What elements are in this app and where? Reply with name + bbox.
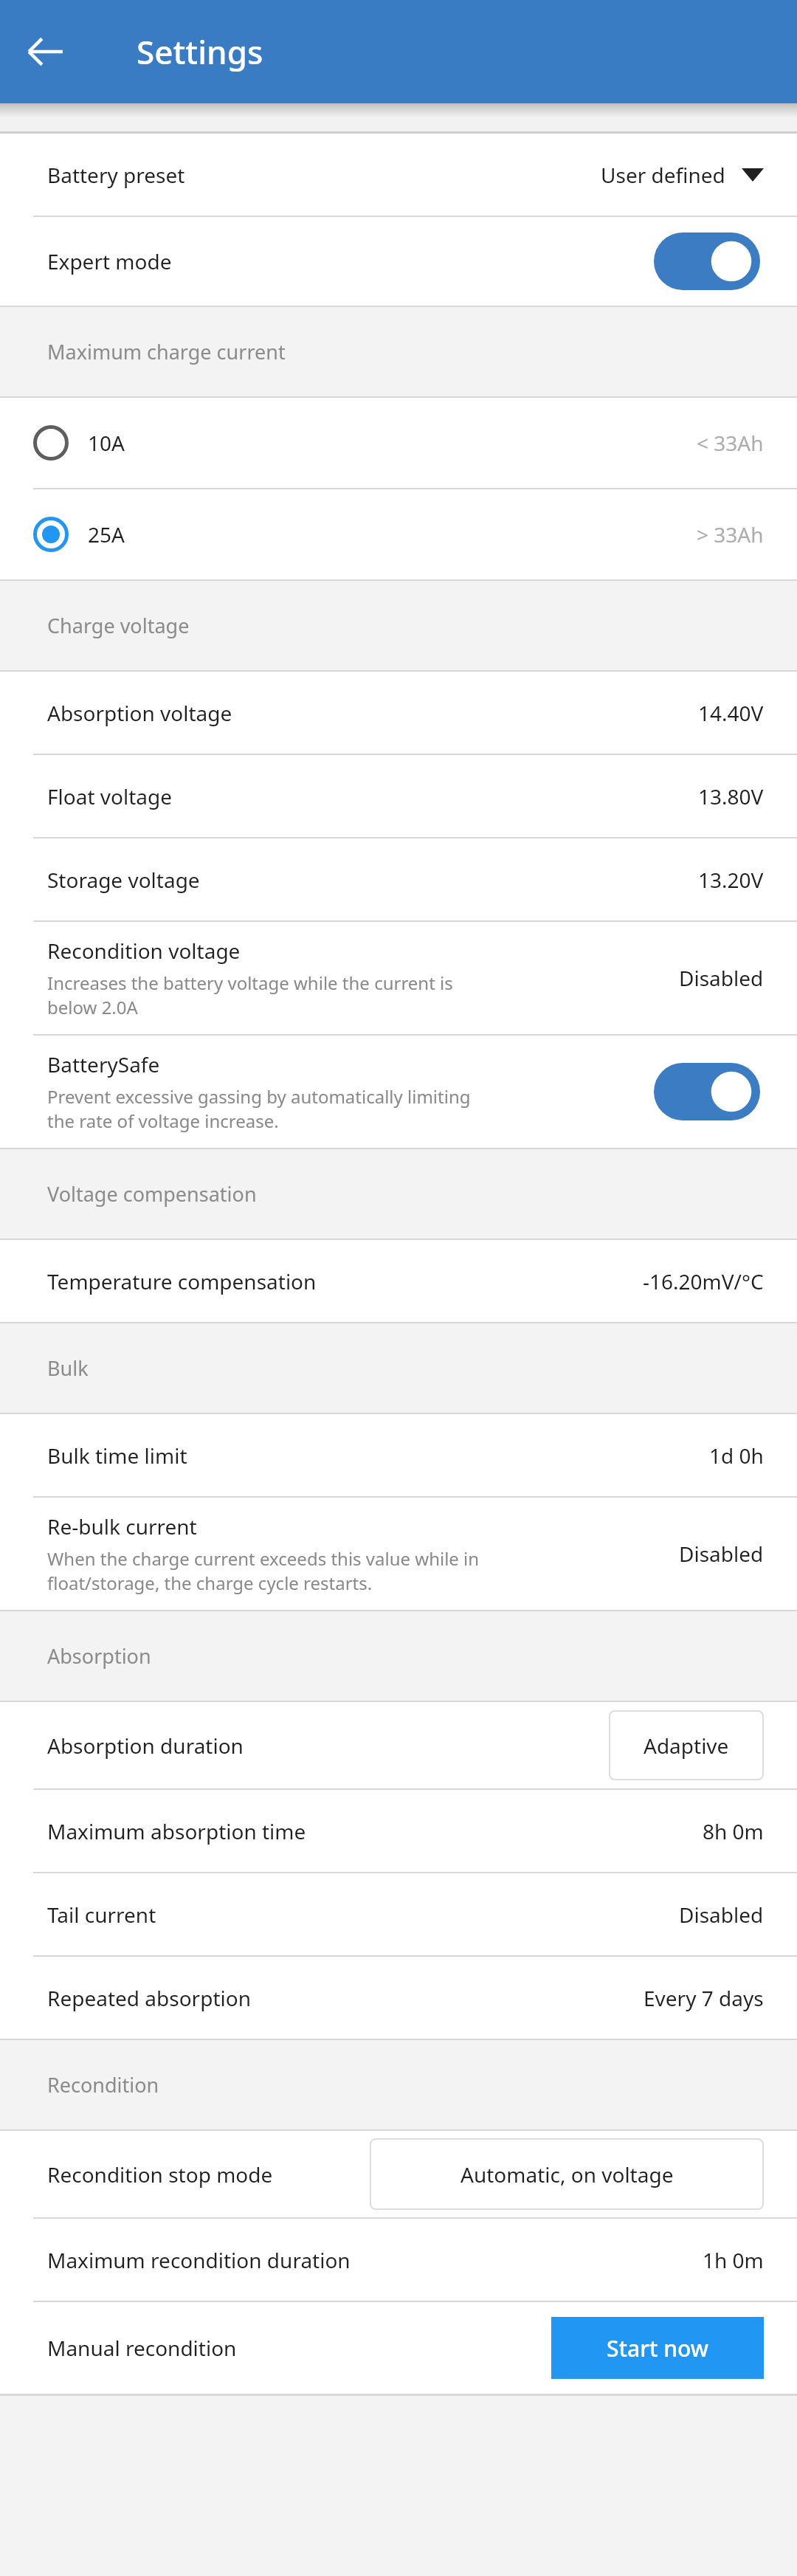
button[interactable]: Back	[15, 21, 77, 83]
button[interactable]: Repeated absorption	[0, 1957, 797, 2039]
staticText: Every 7 days	[644, 1984, 764, 2012]
staticText: Re-bulk current	[47, 1512, 197, 1540]
staticText: Repeated absorption	[47, 1984, 644, 2012]
staticText: Maximum charge current	[47, 338, 286, 365]
staticText: User defined	[601, 161, 725, 189]
button[interactable]: Tail current	[0, 1873, 797, 1955]
staticText: Maximum absorption time	[47, 1817, 703, 1845]
staticText: When the charge current exceeds this val…	[47, 1546, 480, 1595]
staticText: Absorption	[47, 1642, 151, 1670]
staticText: 13.20V	[698, 866, 764, 894]
staticText: > 33Ah	[697, 520, 764, 548]
staticText: Temperature compensation	[47, 1267, 643, 1295]
staticText: Increases the battery voltage while the …	[47, 971, 453, 1019]
button[interactable]: Start now	[551, 2317, 764, 2379]
staticText: Prevent excessive gassing by automatical…	[47, 1084, 471, 1133]
button[interactable]: Battery preset	[0, 134, 797, 216]
button[interactable]: Absorption voltage	[0, 672, 797, 754]
staticText: Recondition stop mode	[47, 2160, 370, 2188]
staticText: BatterySafe	[47, 1050, 160, 1078]
staticText: Maximum recondition duration	[47, 2246, 703, 2274]
button[interactable]: BatterySafe	[0, 1036, 797, 1148]
staticText: Float voltage	[47, 782, 698, 810]
button[interactable]: Recondition stop mode	[0, 2131, 797, 2217]
button[interactable]: Temperature compensation	[0, 1240, 797, 1322]
button[interactable]: Re-bulk current	[0, 1498, 797, 1610]
button[interactable]: Absorption duration	[0, 1702, 797, 1788]
staticText: 10A	[88, 429, 697, 457]
staticText: Bulk time limit	[47, 1442, 709, 1470]
staticText: < 33Ah	[697, 429, 764, 457]
staticText: Manual recondition	[47, 2334, 551, 2362]
staticText: Adaptive	[644, 1732, 729, 1760]
staticText: Settings	[137, 30, 263, 74]
button[interactable]: Maximum recondition duration	[0, 2219, 797, 2301]
staticText: Recondition voltage	[47, 937, 241, 965]
staticText: Charge voltage	[47, 612, 190, 639]
staticText: Tail current	[47, 1901, 679, 1929]
staticText: Battery preset	[47, 161, 601, 189]
button[interactable]: Storage voltage	[0, 838, 797, 920]
staticText: Expert mode	[47, 247, 654, 275]
button[interactable]: Bulk time limit	[0, 1414, 797, 1496]
staticText: 14.40V	[698, 699, 764, 727]
staticText: 1h 0m	[703, 2246, 764, 2274]
staticText: 8h 0m	[703, 1817, 764, 1845]
staticText: 13.80V	[698, 782, 764, 810]
button[interactable]: Maximum absorption time	[0, 1790, 797, 1872]
staticText: -16.20mV/°C	[643, 1267, 764, 1295]
staticText: Voltage compensation	[47, 1180, 257, 1208]
staticText: Start now	[607, 2333, 708, 2363]
staticText: Storage voltage	[47, 866, 698, 894]
staticText: Disabled	[679, 964, 764, 992]
staticText: Disabled	[679, 1901, 764, 1929]
button[interactable]: 10A	[0, 398, 797, 488]
staticText: Recondition	[47, 2071, 159, 2098]
button[interactable]: Float voltage	[0, 755, 797, 837]
staticText: Disabled	[679, 1540, 764, 1568]
button[interactable]: 25A	[0, 489, 797, 579]
staticText: Automatic, on voltage	[460, 2160, 674, 2188]
staticText: Absorption voltage	[47, 699, 698, 727]
staticText: Bulk	[47, 1354, 89, 1382]
button[interactable]: Recondition voltage	[0, 922, 797, 1034]
staticText: 25A	[88, 520, 697, 548]
staticText: Absorption duration	[47, 1732, 609, 1760]
staticText: 1d 0h	[709, 1442, 764, 1470]
button[interactable]: Expert mode	[0, 217, 797, 306]
